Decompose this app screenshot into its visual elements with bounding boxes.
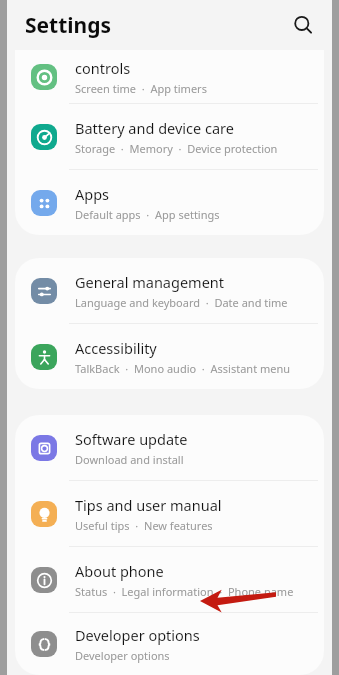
staticText: Settings xyxy=(25,11,112,40)
staticText: Screen time · App timers xyxy=(75,81,207,96)
staticText: Developer options xyxy=(75,625,200,645)
staticText: Useful tips · New features xyxy=(75,518,213,533)
button[interactable]: Tips and user manual xyxy=(15,481,324,546)
staticText: General management xyxy=(75,272,225,292)
staticText: Language and keyboard · Date and time xyxy=(75,295,288,310)
staticText: Default apps · App settings xyxy=(75,207,220,222)
staticText: Battery and device care xyxy=(75,118,234,138)
staticText: TalkBack · Mono audio · Assistant menu xyxy=(75,361,291,376)
staticText: Software update xyxy=(75,429,188,449)
button[interactable]: Battery and device care xyxy=(15,104,324,169)
staticText: About phone xyxy=(75,561,164,581)
staticText: controls xyxy=(75,58,131,78)
button[interactable]: Search xyxy=(286,8,320,42)
staticText: Download and install xyxy=(75,452,184,467)
staticText: Developer options xyxy=(75,648,170,663)
button[interactable]: Accessibility xyxy=(15,324,324,389)
button[interactable]: Apps xyxy=(15,170,324,235)
staticText: Apps xyxy=(75,184,110,204)
staticText: Tips and user manual xyxy=(75,495,222,515)
button[interactable]: Software update xyxy=(15,415,324,480)
staticText: Status · Legal information · Phone name xyxy=(75,584,294,599)
button[interactable]: About phone xyxy=(15,547,324,612)
button[interactable]: controls xyxy=(15,50,324,103)
staticText: Storage · Memory · Device protection xyxy=(75,141,278,156)
button[interactable]: Developer options xyxy=(15,613,324,675)
button[interactable]: General management xyxy=(15,258,324,323)
staticText: Accessibility xyxy=(75,338,157,358)
